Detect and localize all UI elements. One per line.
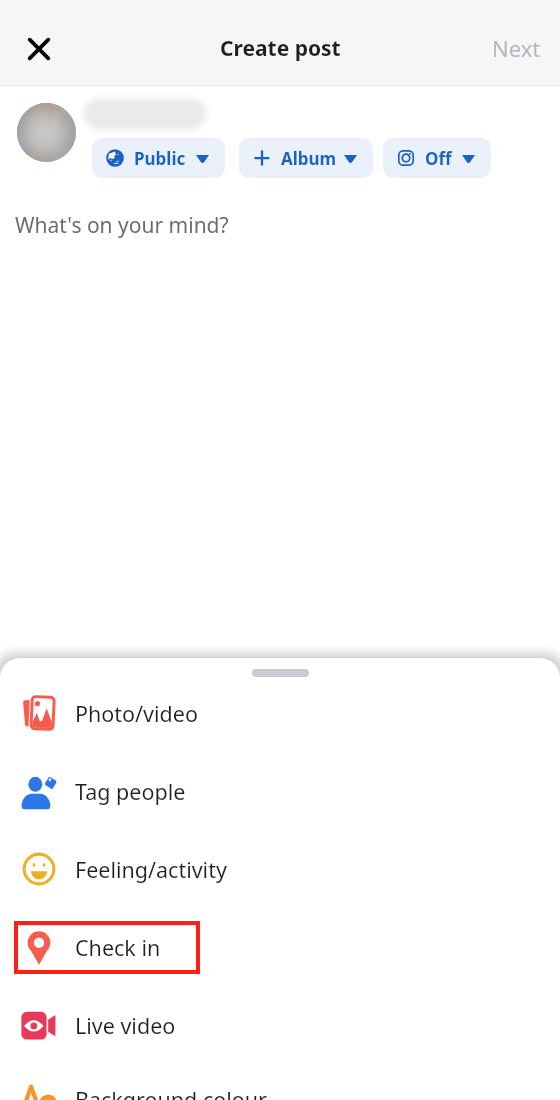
button[interactable]: Tag people <box>0 752 560 830</box>
button[interactable]: Live video <box>0 986 560 1064</box>
button[interactable]: Album <box>239 138 373 178</box>
button[interactable]: Check in <box>0 908 560 986</box>
staticText: Tag people <box>75 777 186 806</box>
button[interactable]: Photo/video <box>0 674 560 752</box>
button[interactable]: Public <box>92 138 225 178</box>
staticText: Check in <box>75 933 161 962</box>
staticText: Next <box>492 33 541 63</box>
staticText: Background colour <box>75 1085 267 1100</box>
staticText: Album <box>281 147 337 170</box>
button[interactable]: Background colour <box>0 1060 560 1100</box>
button[interactable]: Close <box>15 25 63 73</box>
staticText: What's on your mind? <box>15 211 229 240</box>
staticText: Public <box>134 147 186 170</box>
button[interactable]: Next <box>473 21 560 75</box>
staticText: Live video <box>75 1011 176 1040</box>
button[interactable]: Off <box>383 138 491 178</box>
button[interactable]: Feeling/activity <box>0 830 560 908</box>
staticText: Photo/video <box>75 699 198 728</box>
staticText: Feeling/activity <box>75 855 227 884</box>
staticText: Off <box>425 147 452 170</box>
staticText: Create post <box>220 34 341 63</box>
